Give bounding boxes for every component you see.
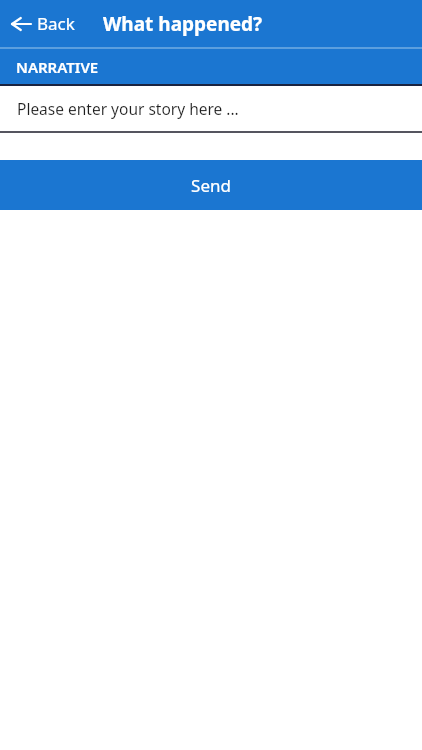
button[interactable]: NARRATIVE bbox=[0, 49, 422, 84]
button[interactable]: Back bbox=[0, 0, 85, 47]
staticText: What happened? bbox=[103, 11, 263, 37]
button[interactable]: Send bbox=[0, 160, 422, 210]
staticText: Back bbox=[37, 12, 75, 35]
button[interactable]: Please enter your story here ... bbox=[0, 86, 422, 133]
staticText: NARRATIVE bbox=[16, 57, 99, 77]
staticText: Please enter your story here ... bbox=[17, 98, 239, 119]
staticText: Send bbox=[191, 174, 231, 197]
